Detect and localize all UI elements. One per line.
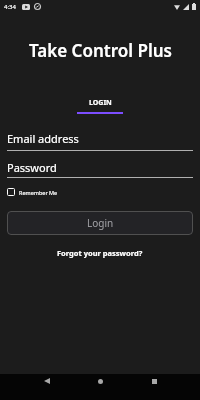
staticText: Take Control Plus bbox=[29, 39, 172, 62]
button[interactable] bbox=[40, 374, 54, 388]
staticText: Password bbox=[7, 160, 57, 175]
staticText: Login bbox=[87, 216, 114, 230]
button[interactable] bbox=[93, 374, 107, 388]
button[interactable]: Remember Me bbox=[7, 188, 58, 196]
button[interactable]: LOGIN bbox=[77, 98, 123, 114]
button[interactable]: Forgot your password? bbox=[57, 248, 143, 258]
button[interactable]: Login bbox=[7, 211, 193, 235]
staticText: Forgot your password? bbox=[57, 248, 143, 258]
button[interactable] bbox=[147, 374, 161, 388]
staticText: Remember Me bbox=[19, 189, 58, 196]
staticText: 4:34 bbox=[4, 3, 16, 11]
staticText: LOGIN bbox=[89, 98, 112, 108]
staticText: Email address bbox=[7, 131, 79, 146]
